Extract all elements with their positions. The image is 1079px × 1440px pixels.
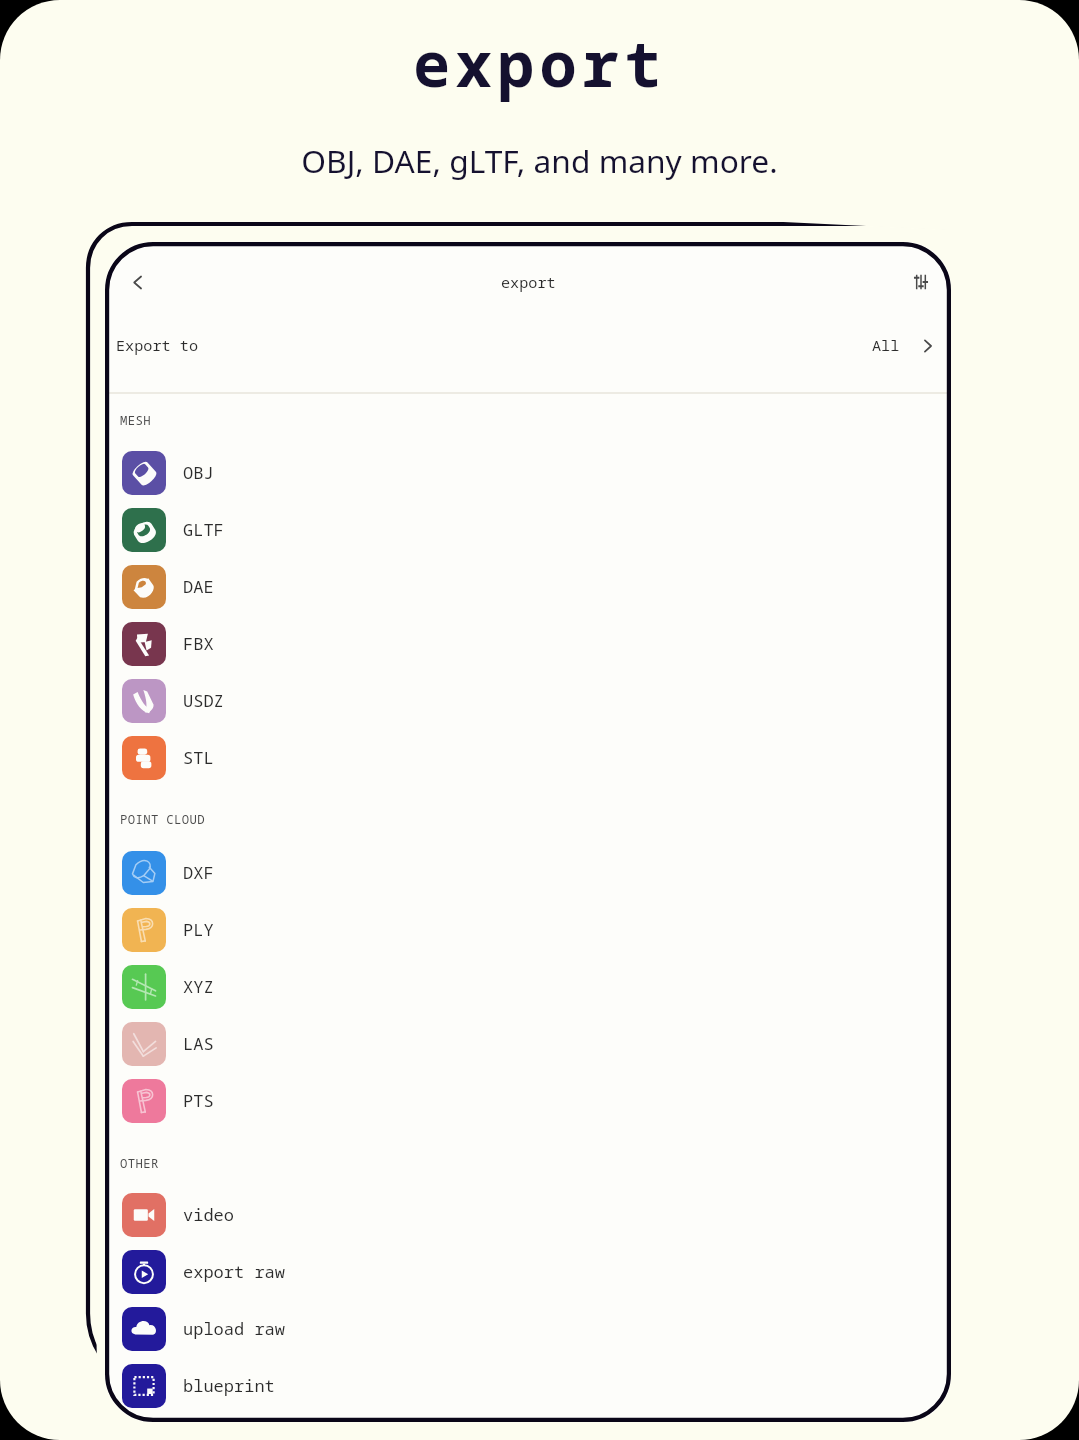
- staticText: Export to: [116, 335, 199, 356]
- staticText: PLY: [183, 918, 214, 941]
- button[interactable]: STL: [105, 729, 951, 786]
- button[interactable]: XYZ: [105, 958, 951, 1015]
- staticText: OTHER: [120, 1155, 159, 1172]
- button[interactable]: Back: [115, 260, 159, 304]
- staticText: USDZ: [183, 689, 224, 712]
- staticText: blueprint: [183, 1374, 275, 1397]
- staticText: PTS: [183, 1089, 214, 1112]
- button[interactable]: Export to: [105, 311, 951, 392]
- staticText: XYZ: [183, 975, 214, 998]
- staticText: export raw: [183, 1260, 285, 1283]
- staticText: POINT CLOUD: [120, 811, 206, 828]
- staticText: OBJ, DAE, gLTF, and many more.: [0, 139, 1079, 182]
- staticText: video: [183, 1203, 234, 1226]
- button[interactable]: PLY: [105, 901, 951, 958]
- staticText: OBJ: [183, 461, 214, 484]
- button[interactable]: video: [105, 1186, 951, 1243]
- button[interactable]: LAS: [105, 1015, 951, 1072]
- button[interactable]: Filter: [899, 260, 943, 304]
- staticText: DXF: [183, 861, 214, 884]
- staticText: DAE: [183, 575, 214, 598]
- staticText: export: [501, 272, 556, 293]
- button[interactable]: DXF: [105, 844, 951, 901]
- staticText: MESH: [120, 412, 151, 429]
- button[interactable]: upload raw: [105, 1300, 951, 1357]
- button[interactable]: blueprint: [105, 1357, 951, 1414]
- staticText: LAS: [183, 1032, 214, 1055]
- staticText: FBX: [183, 632, 214, 655]
- staticText: export: [0, 21, 1079, 105]
- button[interactable]: PTS: [105, 1072, 951, 1129]
- button[interactable]: export raw: [105, 1243, 951, 1300]
- button[interactable]: FBX: [105, 615, 951, 672]
- button[interactable]: DAE: [105, 558, 951, 615]
- staticText: GLTF: [183, 518, 224, 541]
- button[interactable]: GLTF: [105, 501, 951, 558]
- button[interactable]: USDZ: [105, 672, 951, 729]
- button[interactable]: OBJ: [105, 444, 951, 501]
- staticText: upload raw: [183, 1317, 285, 1340]
- staticText: All: [872, 335, 900, 356]
- staticText: STL: [183, 746, 214, 769]
